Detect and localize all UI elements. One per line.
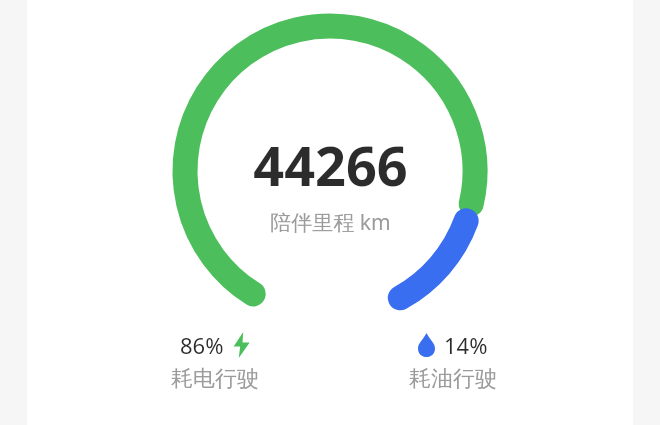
- staticText: 86%: [180, 330, 224, 360]
- staticText: 44266: [253, 128, 408, 202]
- staticText: 耗电行驶: [171, 365, 259, 393]
- button[interactable]: Fuel driving: [388, 330, 518, 393]
- staticText: 耗油行驶: [409, 365, 497, 393]
- button[interactable]: 86%: [150, 330, 280, 393]
- staticText: 陪伴里程 km: [270, 208, 391, 237]
- staticText: 14%: [444, 330, 488, 360]
- other: Fuel driving: [418, 333, 435, 357]
- other: Electric driving: [233, 332, 250, 358]
